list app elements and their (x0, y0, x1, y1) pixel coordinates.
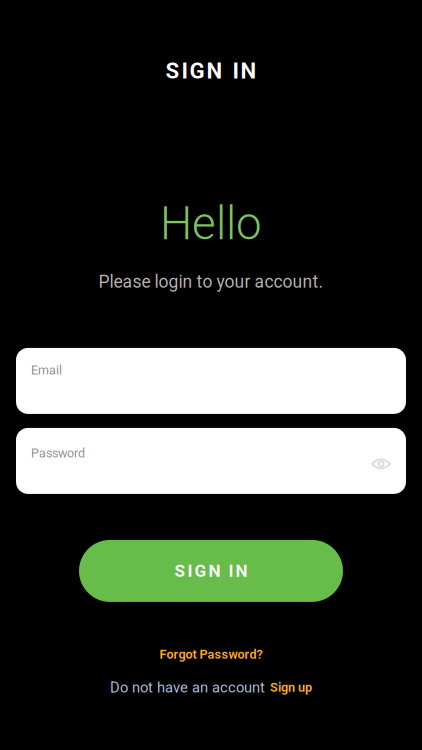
staticText: S I G N I N (165, 58, 256, 84)
button[interactable]: Show password (363, 446, 399, 482)
staticText: Email (31, 363, 62, 378)
staticText: Sign up (270, 680, 312, 695)
staticText: Hello (160, 197, 262, 250)
button[interactable]: Forgot Password? (159, 647, 262, 662)
button[interactable]: Sign up (270, 680, 312, 695)
staticText: S I G N I N (174, 561, 247, 581)
staticText: Please login to your account. (98, 271, 323, 292)
staticText: Forgot Password? (159, 647, 262, 662)
staticText: Do not have an account (110, 679, 265, 696)
button[interactable]: S I G N I N (79, 540, 343, 602)
staticText: Password (31, 446, 85, 461)
